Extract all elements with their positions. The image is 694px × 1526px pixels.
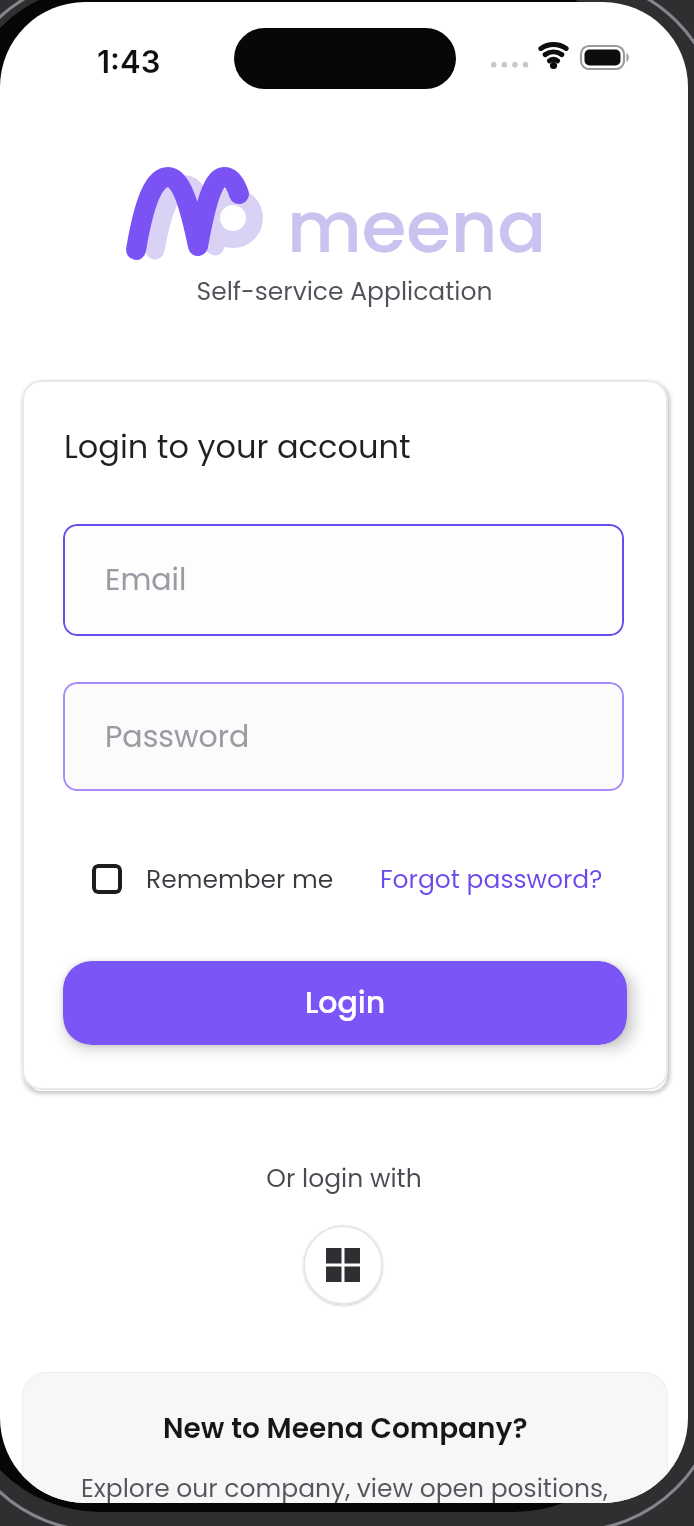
staticText: Login: [305, 982, 386, 1024]
staticText: Remember me: [146, 862, 334, 897]
button[interactable]: [303, 1225, 383, 1305]
staticText: 1:43: [97, 43, 161, 81]
staticText: Explore our company, view open positions…: [81, 1471, 609, 1503]
button[interactable]: New to Meena Company?: [22, 1372, 668, 1503]
staticText: New to Meena Company?: [163, 1409, 528, 1448]
button[interactable]: Forgot password?: [22, 380, 245, 415]
button[interactable]: Email: [63, 524, 624, 636]
staticText: Password: [105, 716, 250, 758]
button[interactable]: [92, 864, 122, 894]
button[interactable]: Password: [63, 682, 624, 791]
button[interactable]: Login: [63, 961, 627, 1045]
staticText: Email: [105, 559, 187, 601]
staticText: Or login with: [266, 1161, 422, 1196]
staticText: Login to your account: [64, 424, 411, 469]
staticText: Self-service Application: [196, 274, 493, 309]
staticText: meena: [287, 176, 547, 277]
